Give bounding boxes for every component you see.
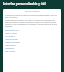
button[interactable]: Temas y colores [5,32,59,34]
button[interactable]: Menú de navegación [5,10,59,12]
staticText: La interfaz de usuario del sistema es to… [5,14,59,18]
button[interactable]: Personalizar inicio [5,29,59,31]
staticText: Preferencias [5,47,15,49]
staticText: Accesibilidad [5,35,15,37]
button[interactable]: Atajos de teclado [5,38,59,40]
staticText: Temas y colores [5,32,17,34]
staticText: Widgets del sistema [5,41,21,43]
staticText: Notificaciones [5,44,16,46]
button[interactable]: Accesibilidad [5,35,59,37]
staticText: Más opciones [5,50,16,52]
button[interactable]: Widgets del sistema [5,41,59,43]
staticText: Puedes cambiar los colores, los iconos y… [5,19,59,27]
button[interactable]: Preferencias [5,47,59,49]
staticText: Interfaz personalizable y útil [3,2,46,6]
staticText: Personalizar inicio [5,29,19,31]
staticText: Atajos de teclado [5,38,18,40]
staticText: Menú de navegación [25,10,40,12]
button[interactable]: Notificaciones [5,44,59,46]
button[interactable]: Más opciones [5,50,59,52]
